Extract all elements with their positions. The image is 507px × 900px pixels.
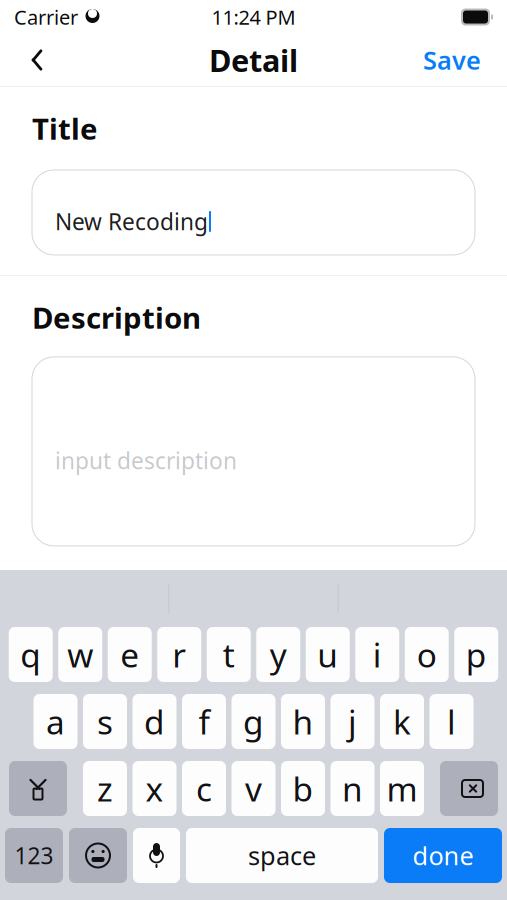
button[interactable]: x [132,761,176,816]
staticText: z [97,766,113,811]
button[interactable]: Save [411,38,493,82]
button[interactable]: j [330,694,374,749]
button[interactable]: k [380,694,424,749]
staticText: Title [32,109,98,148]
button[interactable]: i [355,627,399,682]
button[interactable]: d [132,694,176,749]
button[interactable]: Emoji [69,828,127,883]
staticText: m [386,766,417,811]
button[interactable]: space [186,828,378,883]
button[interactable]: e [108,627,152,682]
staticText: New Recoding [55,206,208,236]
button[interactable]: m [380,761,424,816]
button[interactable]: input description [32,357,475,546]
staticText: 11:24 PM [211,4,295,30]
staticText: s [97,699,113,744]
button[interactable]: g [231,694,275,749]
staticText: a [46,699,65,744]
button[interactable]: New Recoding [32,170,475,255]
button[interactable]: b [281,761,325,816]
button[interactable]: p [454,627,498,682]
staticText: space [248,839,316,872]
button[interactable]: s [83,694,127,749]
staticText: k [393,699,411,744]
button[interactable]: a [33,694,77,749]
button[interactable]: w [58,627,102,682]
button[interactable]: c [182,761,226,816]
staticText: u [317,632,338,677]
staticText: e [120,632,139,677]
staticText: n [342,766,363,811]
staticText: y [270,632,287,677]
staticText: Description [32,298,201,337]
staticText: Carrier [14,4,78,30]
staticText: input description [55,445,237,475]
button[interactable]: z [83,761,127,816]
staticText: b [292,766,313,811]
button[interactable]: q [9,627,53,682]
button[interactable]: n [330,761,374,816]
staticText: o [417,632,437,677]
button[interactable]: t [207,627,251,682]
button[interactable]: Delete [440,761,498,816]
staticText: w [67,632,93,677]
button[interactable]: h [281,694,325,749]
staticText: r [172,632,186,677]
staticText: f [198,699,209,744]
staticText: h [292,699,313,744]
staticText: 123 [14,840,53,870]
button[interactable]: y [256,627,300,682]
button[interactable]: l [429,694,473,749]
button[interactable]: Shift [9,761,67,816]
staticText: v [245,766,262,811]
button[interactable]: Dictation [133,828,180,883]
staticText: q [20,632,41,677]
button[interactable]: Back [14,38,60,82]
button[interactable]: v [231,761,275,816]
staticText: p [466,632,487,677]
staticText: d [144,699,165,744]
button[interactable]: 123 [5,828,63,883]
button[interactable]: u [306,627,350,682]
button[interactable]: f [182,694,226,749]
staticText: j [348,699,357,744]
staticText: t [223,632,235,677]
staticText: Detail [209,40,298,80]
staticText: l [447,699,456,744]
button[interactable]: o [405,627,449,682]
staticText: c [196,766,212,811]
staticText: g [243,699,264,744]
button[interactable]: done [384,828,502,883]
staticText: x [145,766,163,811]
staticText: done [412,839,473,872]
staticText: i [373,632,382,677]
button[interactable]: r [157,627,201,682]
staticText: Save [423,43,481,77]
